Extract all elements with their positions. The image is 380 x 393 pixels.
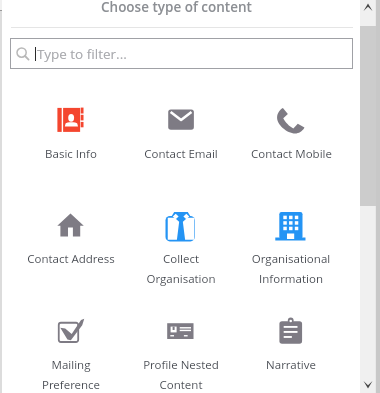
staticText: Basic Info: [45, 146, 97, 162]
button[interactable]: Contact Address: [16, 208, 126, 267]
button[interactable]: Collect Organisation: [126, 208, 236, 287]
button[interactable]: Scroll up: [360, 0, 376, 22]
staticText: Collect Organisation: [135, 251, 227, 287]
button[interactable]: Mailing Preference: [16, 314, 126, 393]
button[interactable]: Scroll down: [360, 371, 376, 393]
staticText: Type to filter...: [37, 45, 127, 63]
staticText: Mailing Preference: [25, 357, 117, 393]
button[interactable]: Contact Email: [126, 103, 236, 162]
button[interactable]: Narrative: [236, 314, 346, 373]
button[interactable]: Contact Mobile: [236, 103, 346, 162]
staticText: Choose type of content: [101, 0, 252, 16]
staticText: Profile Nested Content: [135, 357, 227, 393]
button[interactable]: Basic Info: [16, 103, 126, 162]
staticText: Contact Email: [144, 146, 218, 162]
staticText: Contact Mobile: [251, 146, 332, 162]
staticText: Contact Address: [27, 251, 115, 267]
button[interactable]: Organisational Information: [236, 208, 346, 287]
button[interactable]: Type to filter...: [10, 38, 353, 69]
staticText: Narrative: [266, 357, 316, 373]
button[interactable]: Profile Nested Content: [126, 314, 236, 393]
staticText: Organisational Information: [245, 251, 337, 287]
